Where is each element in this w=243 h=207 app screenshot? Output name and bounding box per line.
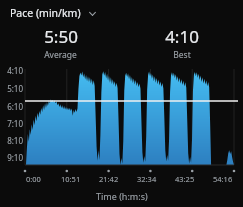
staticText: Best [173,49,191,61]
staticText: Average [44,49,77,61]
staticText: 5:10 [0,83,23,94]
staticText: 4:10 [165,25,199,48]
staticText: 10:51 [61,174,81,184]
button[interactable]: 4:10 [121,25,243,61]
staticText: 9:10 [0,152,23,163]
staticText: Time (h:m:s) [96,190,148,202]
staticText: 7:10 [0,118,23,129]
staticText: 21:42 [99,174,119,184]
staticText: 32:34 [137,174,157,184]
staticText: Pace (min/km) [10,6,81,20]
staticText: 43:25 [175,174,195,184]
button[interactable]: Pace (min/km) [8,4,99,22]
staticText: 54:16 [213,174,233,184]
button[interactable]: 5:50 [0,25,121,61]
staticText: 6:10 [0,101,23,112]
button[interactable]: Pace chart [0,65,243,185]
staticText: 4:10 [0,65,23,76]
staticText: 8:10 [0,135,23,146]
staticText: 5:50 [44,25,78,48]
staticText: 0:00 [26,174,41,184]
